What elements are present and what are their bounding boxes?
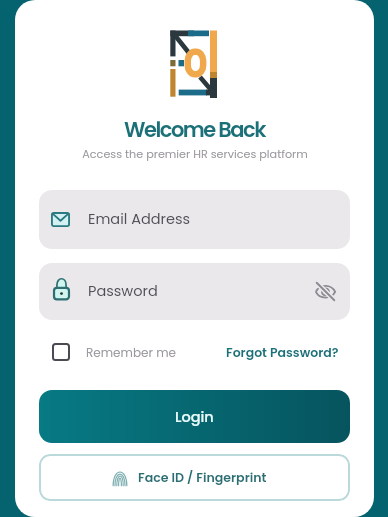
button[interactable]: Remember me <box>52 343 176 361</box>
button[interactable]: Email Address <box>39 190 350 249</box>
staticText: Remember me <box>86 344 176 361</box>
staticText: Forgot Password? <box>226 344 339 361</box>
staticText: Face ID / Fingerprint <box>138 469 267 487</box>
staticText: Login <box>175 407 214 427</box>
button[interactable]: Show password <box>306 272 345 311</box>
button[interactable]: Forgot Password? <box>226 344 339 361</box>
staticText: Password <box>88 281 158 301</box>
staticText: Email Address <box>88 209 191 229</box>
button[interactable]: Face ID / Fingerprint <box>39 454 350 501</box>
button[interactable]: Password <box>39 263 350 320</box>
staticText: Access the premier HR services platform <box>82 146 308 162</box>
button[interactable]: Login <box>39 390 350 443</box>
staticText: Welcome Back <box>124 115 265 144</box>
